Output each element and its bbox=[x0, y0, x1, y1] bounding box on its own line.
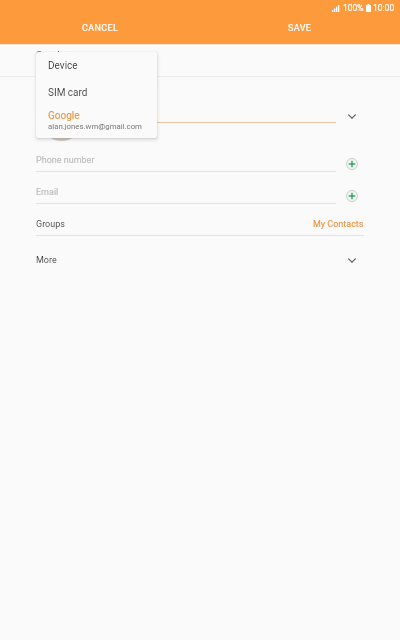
staticText: My Contacts bbox=[313, 219, 364, 230]
staticText: 10:00 bbox=[373, 3, 395, 13]
staticText: Google bbox=[36, 50, 65, 61]
button[interactable]: Device bbox=[36, 52, 157, 79]
button[interactable]: Add bbox=[342, 154, 362, 174]
button[interactable]: CANCEL bbox=[0, 16, 200, 44]
staticText: SIM card bbox=[48, 87, 88, 99]
staticText: CANCEL bbox=[82, 23, 119, 34]
staticText: Phone number bbox=[36, 155, 95, 166]
staticText: 100% bbox=[343, 3, 364, 13]
button[interactable]: Choose account bbox=[344, 108, 360, 124]
staticText: Groups bbox=[36, 219, 65, 230]
button[interactable]: SAVE bbox=[200, 16, 400, 44]
staticText: alan.jones.wm@gmail.com bbox=[48, 122, 142, 131]
button[interactable]: SIM card bbox=[36, 79, 157, 106]
staticText: More bbox=[36, 255, 57, 266]
button[interactable]: Google bbox=[36, 106, 157, 138]
staticText: SAVE bbox=[288, 23, 312, 34]
button[interactable]: Phone number bbox=[0, 149, 400, 180]
staticText: Device bbox=[48, 60, 78, 72]
button[interactable]: Groups bbox=[0, 213, 400, 244]
button[interactable]: More bbox=[0, 249, 400, 277]
staticText: Google bbox=[48, 110, 80, 122]
staticText: Email bbox=[36, 187, 59, 198]
button[interactable]: Email bbox=[0, 181, 400, 212]
button[interactable]: Add bbox=[342, 186, 362, 206]
